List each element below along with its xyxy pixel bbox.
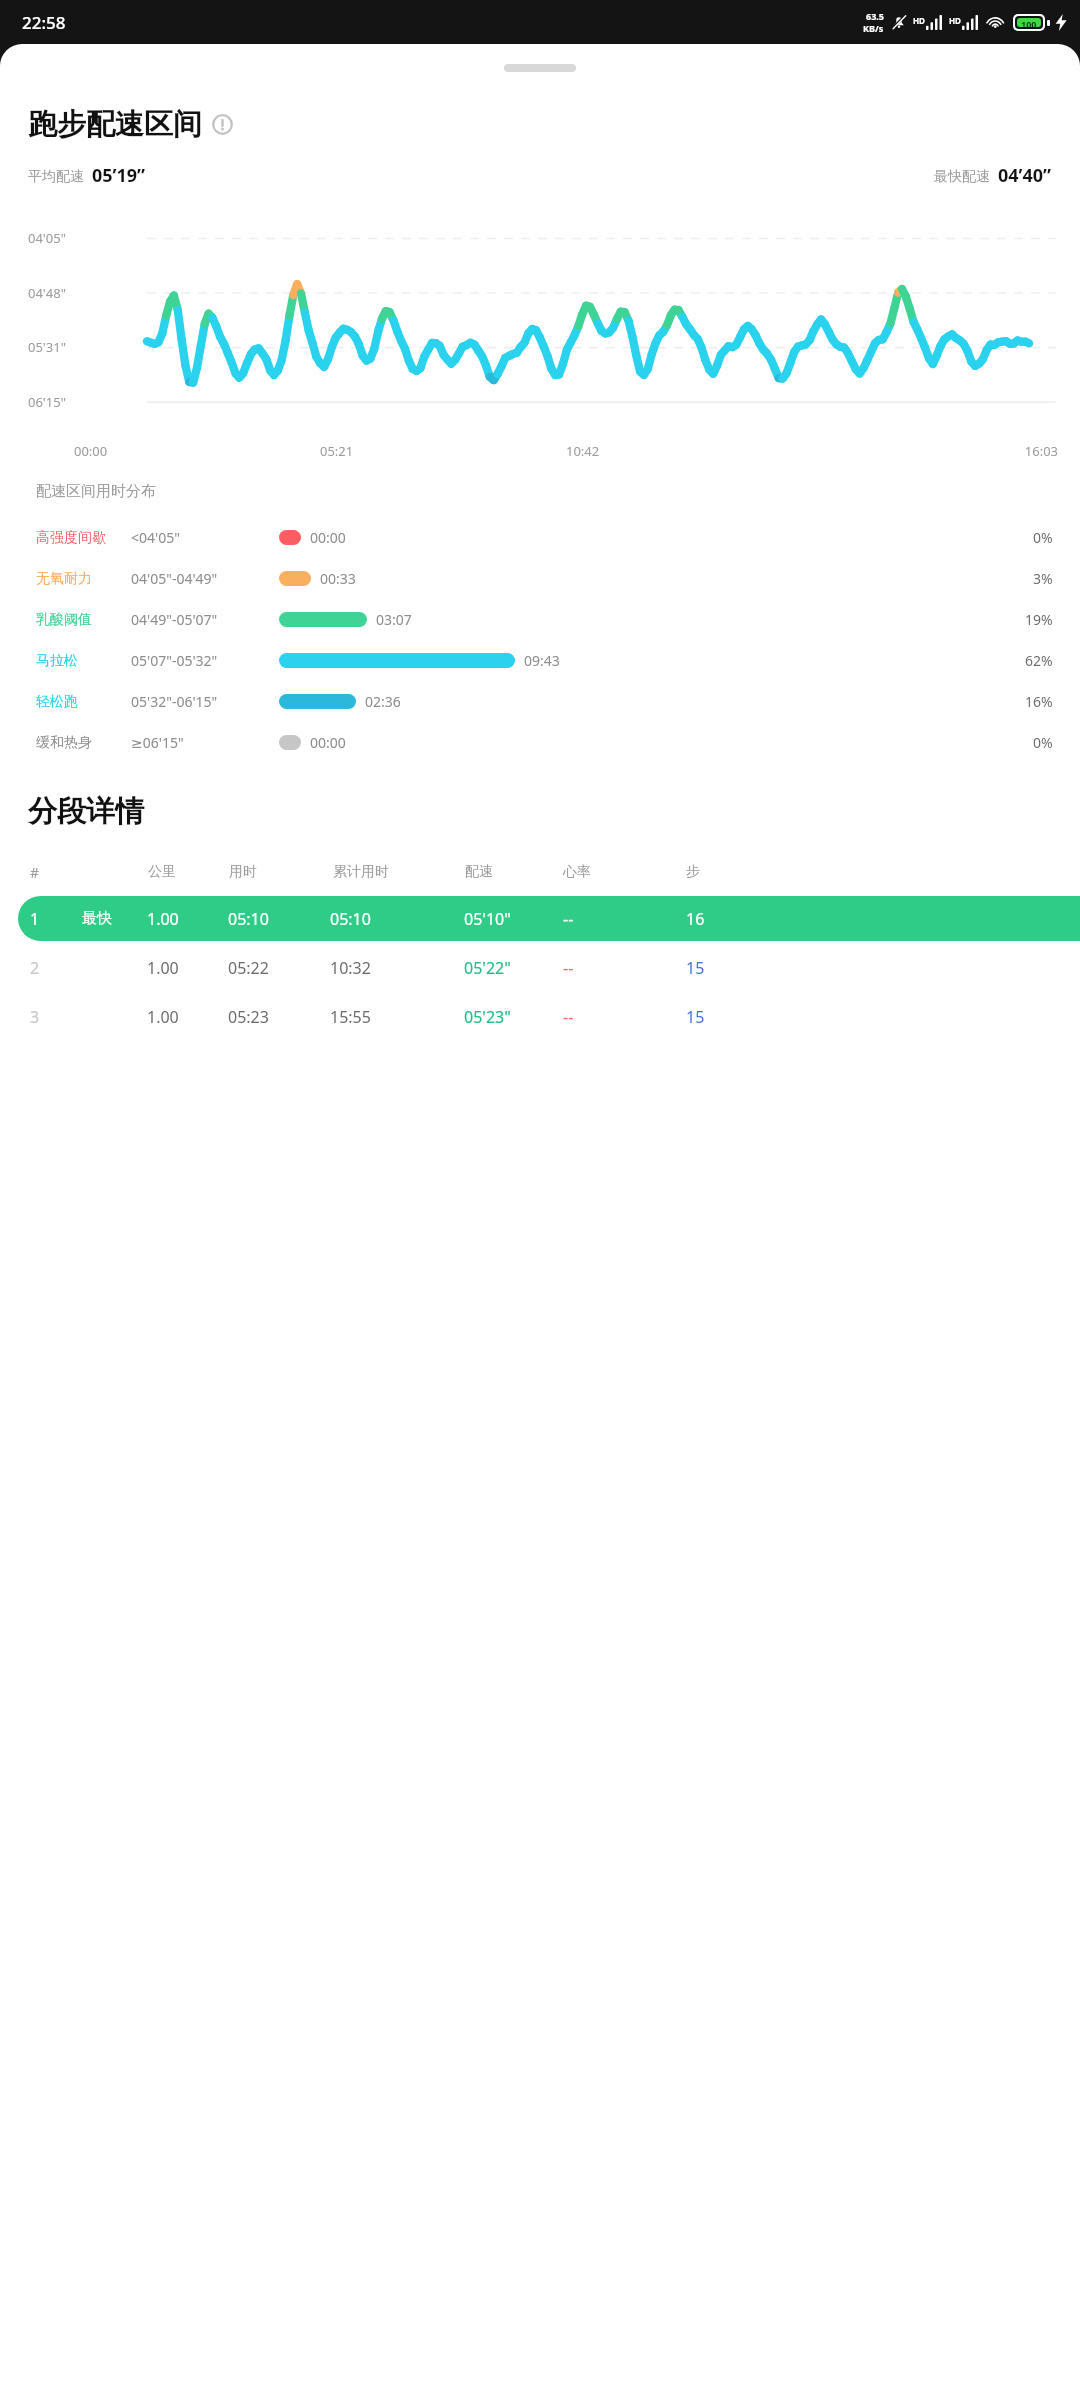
staticText: 05'22" (464, 957, 511, 979)
staticText: 00:00 (310, 733, 346, 752)
staticText: 马拉松 (36, 652, 78, 670)
staticText: 分段详情 (28, 793, 144, 830)
staticText: 3% (1033, 569, 1053, 588)
staticText: 配速区间用时分布 (36, 482, 156, 501)
staticText: 02:36 (365, 692, 401, 711)
staticText: HD (913, 15, 925, 26)
staticText: 乳酸阈值 (36, 611, 92, 629)
staticText: 19% (1025, 610, 1053, 629)
staticText: 06'15" (28, 393, 66, 411)
staticText: 04'05"-04'49" (131, 569, 218, 588)
staticText: -- (563, 908, 574, 930)
staticText: 05:10 (228, 908, 269, 930)
staticText: 16:03 (812, 442, 1058, 460)
staticText: 00:00 (74, 442, 320, 460)
staticText: 3 (30, 1006, 40, 1028)
staticText: 轻松跑 (36, 693, 78, 711)
staticText: 高强度间歇 (36, 529, 106, 547)
staticText: 62% (1025, 651, 1053, 670)
staticText: 100 (1021, 18, 1037, 27)
staticText: 16 (686, 908, 705, 930)
staticText: 15 (686, 1006, 705, 1028)
button[interactable]: 轻松跑 (0, 681, 1080, 722)
staticText: 无氧耐力 (36, 570, 92, 588)
staticText: 最快 (82, 909, 112, 928)
button[interactable]: 说明 (212, 114, 233, 135)
staticText: HD (949, 15, 961, 26)
button[interactable]: 马拉松 (0, 640, 1080, 681)
staticText: 05'23" (464, 1006, 511, 1028)
staticText: 04'49"-05'07" (131, 610, 218, 629)
button[interactable]: 高强度间歇 (0, 517, 1080, 558)
staticText: -- (563, 957, 574, 979)
staticText: 15:55 (330, 1006, 371, 1028)
staticText: 1.00 (147, 1006, 179, 1028)
staticText: 00:00 (310, 528, 346, 547)
staticText: 03:07 (376, 610, 412, 629)
staticText: 1.00 (147, 908, 179, 930)
staticText: 平均配速 (28, 168, 84, 186)
staticText: 05:10 (330, 908, 371, 930)
staticText: -- (563, 1006, 574, 1028)
staticText: KB/s (863, 22, 884, 34)
staticText: 05'31" (28, 338, 66, 356)
staticText: 用时 (229, 863, 257, 881)
staticText: # (30, 863, 40, 882)
staticText: 04'05" (28, 229, 66, 247)
staticText: 缓和热身 (36, 734, 92, 752)
staticText: ≥06'15" (131, 733, 184, 752)
staticText: 2 (30, 957, 40, 979)
staticText: 1 (30, 908, 40, 930)
staticText: 10:32 (330, 957, 371, 979)
staticText: 步 (686, 863, 700, 881)
staticText: 63.5 (866, 10, 884, 22)
button[interactable]: 3 (0, 992, 1080, 1041)
staticText: 04'48" (28, 284, 66, 302)
staticText: 心率 (563, 863, 591, 881)
button[interactable]: 跑步配速区间 (28, 106, 1080, 143)
staticText: 配速 (465, 863, 493, 881)
button[interactable]: 乳酸阈值 (0, 599, 1080, 640)
staticText: 跑步配速区间 (28, 106, 202, 143)
staticText: 15 (686, 957, 705, 979)
staticText: 04’40” (998, 163, 1052, 188)
staticText: 0% (1033, 733, 1053, 752)
button[interactable]: 无氧耐力 (0, 558, 1080, 599)
staticText: 05:21 (320, 442, 566, 460)
staticText: 0% (1033, 528, 1053, 547)
staticText: 05'32"-06'15" (131, 692, 218, 711)
staticText: 05’19” (92, 163, 146, 188)
staticText: 公里 (148, 863, 176, 881)
staticText: 05'07"-05'32" (131, 651, 218, 670)
staticText: 05:22 (228, 957, 269, 979)
button[interactable]: 1 (0, 894, 1080, 943)
button[interactable]: 2 (0, 943, 1080, 992)
staticText: 10:42 (566, 442, 812, 460)
button[interactable]: 缓和热身 (0, 722, 1080, 763)
staticText: 16% (1025, 692, 1053, 711)
staticText: 1.00 (147, 957, 179, 979)
staticText: 05:23 (228, 1006, 269, 1028)
staticText: 00:33 (320, 569, 356, 588)
staticText: 最快配速 (934, 168, 990, 186)
staticText: 累计用时 (333, 863, 389, 881)
staticText: <04'05" (131, 528, 180, 547)
staticText: 09:43 (524, 651, 560, 670)
staticText: 22:58 (22, 11, 66, 34)
staticText: 05'10" (464, 908, 511, 930)
